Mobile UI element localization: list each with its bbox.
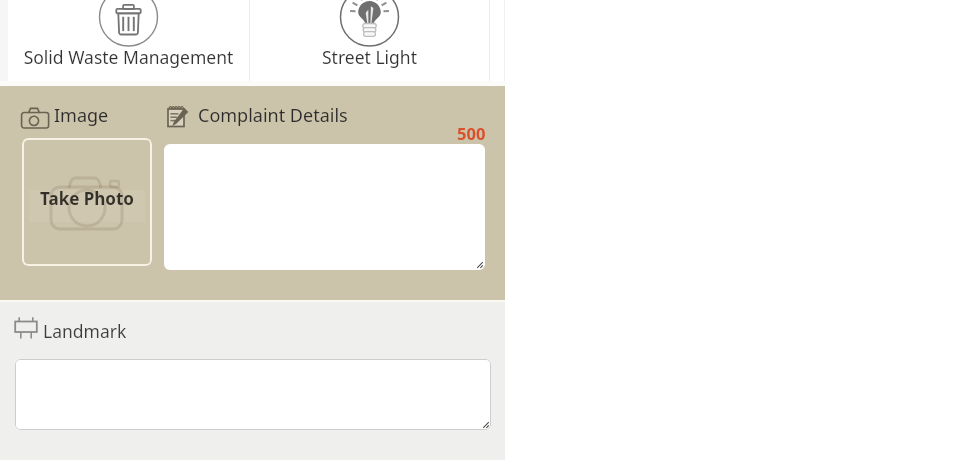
staticText: Complaint Details — [198, 103, 348, 128]
button[interactable]: Solid Waste Management — [8, 0, 249, 81]
button[interactable]: Landmark input — [15, 359, 491, 430]
button[interactable]: Complaint details input — [164, 144, 485, 270]
staticText: Street Light — [250, 45, 489, 69]
button[interactable]: Take Photo — [22, 138, 152, 266]
staticText: Solid Waste Management — [8, 45, 249, 69]
staticText: Image — [54, 103, 109, 128]
button[interactable]: Street Light — [250, 0, 489, 81]
staticText: 500 — [457, 122, 486, 144]
staticText: Take Photo — [40, 187, 134, 210]
staticText: Landmark — [43, 319, 127, 343]
